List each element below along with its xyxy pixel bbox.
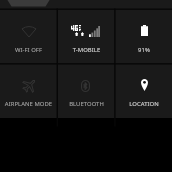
staticText: AIRPLANE MODE: [0, 100, 57, 108]
staticText: LOCATION: [116, 100, 172, 108]
staticText: T-MOBILE: [58, 46, 115, 54]
button[interactable]: Wi-Fi off: [0, 10, 57, 64]
button[interactable]: Location: [116, 64, 172, 118]
button[interactable]: Bluetooth: [58, 64, 115, 118]
staticText: 91%: [116, 46, 172, 54]
staticText: BLUETOOTH: [58, 100, 115, 108]
staticText: WI-FI OFF: [0, 46, 57, 54]
button[interactable]: T-Mobile network: [58, 10, 115, 64]
button[interactable]: Airplane mode: [0, 64, 57, 118]
button[interactable]: Battery 91 percent: [116, 10, 172, 64]
